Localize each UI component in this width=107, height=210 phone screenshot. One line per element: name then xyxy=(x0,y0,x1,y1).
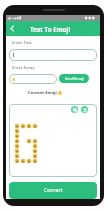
staticText: Enter Text xyxy=(12,40,32,46)
button[interactable] xyxy=(9,49,97,61)
staticText: Convert xyxy=(44,187,63,194)
button[interactable]: Delete xyxy=(81,106,88,113)
staticText: Send Emoji xyxy=(65,76,84,81)
button[interactable]: Convert xyxy=(9,182,97,199)
staticText: Current Emoji xyxy=(28,90,57,96)
button[interactable]: Back xyxy=(6,21,18,36)
button[interactable]: Copy xyxy=(71,106,78,113)
staticText: Text To Emoji xyxy=(30,25,71,33)
staticText: Enter Emoji xyxy=(12,65,35,71)
button[interactable] xyxy=(9,74,57,84)
button[interactable]: Send Emoji xyxy=(59,74,89,83)
